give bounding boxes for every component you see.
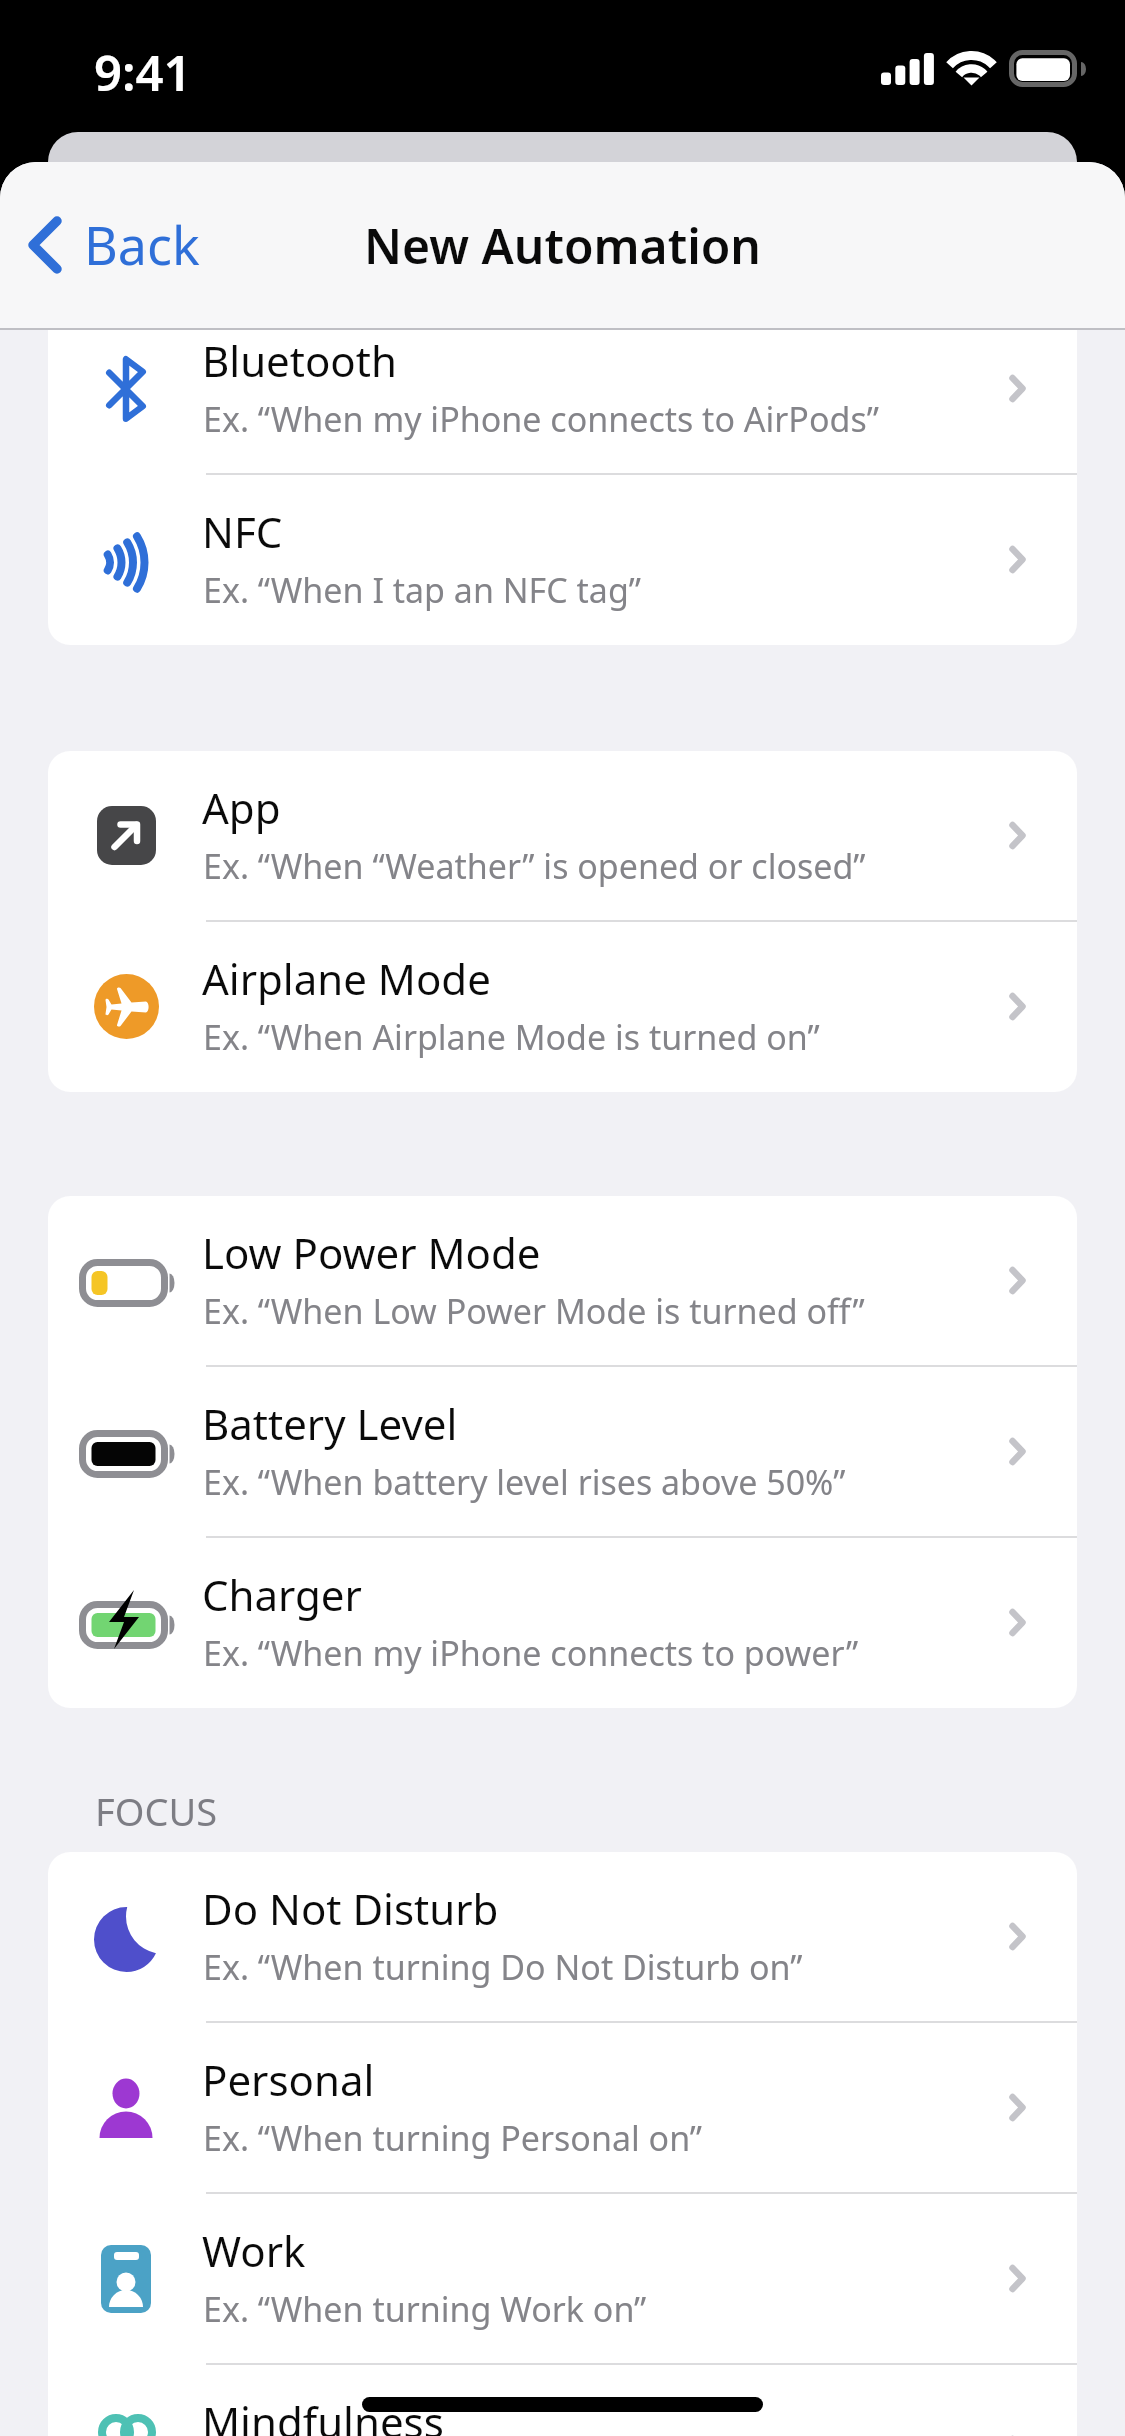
button[interactable]: Bluetooth	[48, 304, 1077, 473]
button[interactable]: Personal	[48, 2023, 1077, 2192]
other: Battery	[78, 1424, 174, 1480]
staticText: Ex. “When battery level rises above 50%”	[203, 1459, 846, 1505]
staticText: Work	[202, 2222, 306, 2279]
staticText: Ex. “When turning Personal on”	[203, 2115, 703, 2161]
staticText: Personal	[202, 2051, 375, 2108]
staticText: Battery Level	[202, 1395, 458, 1452]
other: Work	[101, 2245, 151, 2313]
button[interactable]: Battery	[48, 1538, 1077, 1707]
button[interactable]: Mindfulness	[48, 2365, 1077, 2436]
button[interactable]: NFC	[48, 475, 1077, 644]
other: Personal	[96, 2076, 156, 2140]
staticText: FOCUS	[95, 1785, 218, 1837]
staticText: Ex. “When my iPhone connects to power”	[203, 1630, 859, 1676]
staticText: Low Power Mode	[202, 1224, 541, 1281]
button[interactable]: App	[48, 751, 1077, 920]
other: Airplane Mode	[94, 974, 159, 1039]
other: Battery	[78, 1595, 174, 1651]
staticText: Airplane Mode	[202, 950, 491, 1007]
button[interactable]: Work	[48, 2194, 1077, 2363]
staticText: Do Not Disturb	[202, 1880, 499, 1937]
staticText: 9:41	[94, 39, 192, 106]
button[interactable]: Back	[9, 183, 187, 307]
other: NFC	[96, 524, 156, 596]
button[interactable]: Battery	[48, 1367, 1077, 1536]
button[interactable]: Battery	[48, 1196, 1077, 1365]
staticText: NFC	[202, 503, 283, 560]
staticText: Ex. “When turning Work on”	[203, 2286, 647, 2332]
staticText: Ex. “When my iPhone connects to AirPods”	[203, 396, 879, 442]
button[interactable]: Airplane Mode	[48, 922, 1077, 1091]
staticText: Mindfulness	[202, 2393, 444, 2436]
staticText: Ex. “When turning Do Not Disturb on”	[203, 1944, 803, 1990]
other: Bluetooth	[98, 349, 154, 429]
staticText: Ex. “When Low Power Mode is turned off”	[203, 1288, 865, 1334]
other: App	[97, 806, 156, 865]
staticText: Charger	[202, 1566, 362, 1623]
staticText: Ex. “When I tap an NFC tag”	[203, 567, 642, 613]
staticText: Ex. “When “Weather” is opened or closed”	[203, 843, 866, 889]
staticText: App	[202, 779, 281, 836]
button[interactable]: Do Not Disturb	[48, 1852, 1077, 2021]
other: Mindfulness	[88, 2412, 164, 2436]
staticText: New Automation	[0, 213, 1125, 278]
staticText: Bluetooth	[202, 332, 397, 389]
staticText: Back	[84, 209, 200, 280]
staticText: Ex. “When Airplane Mode is turned on”	[203, 1014, 820, 1060]
other: Battery	[78, 1253, 174, 1309]
other: Do Not Disturb	[88, 1899, 164, 1975]
